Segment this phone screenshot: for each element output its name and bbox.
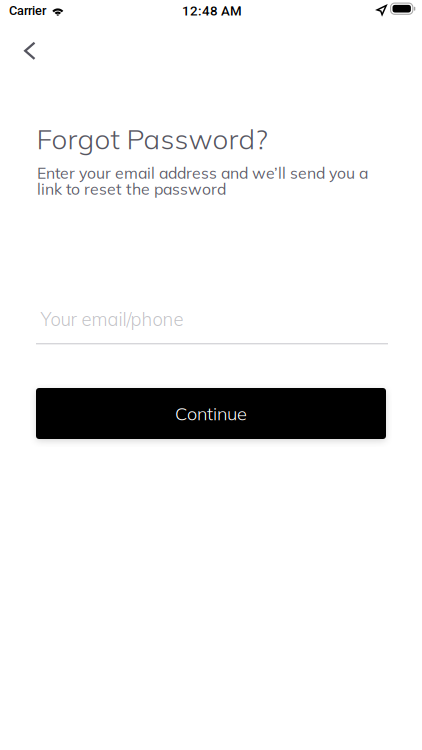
button[interactable]: Continue — [36, 388, 386, 439]
button[interactable]: Back — [8, 29, 52, 73]
staticText: Forgot Password? — [37, 121, 268, 156]
staticText: Continue — [175, 402, 247, 425]
staticText: Your email/phone — [40, 307, 183, 331]
staticText: 12:48 AM — [182, 3, 242, 19]
staticText: Carrier — [9, 3, 46, 18]
staticText: link to reset the password — [37, 179, 226, 199]
staticText: Enter your email address and we’ll send … — [37, 163, 368, 183]
